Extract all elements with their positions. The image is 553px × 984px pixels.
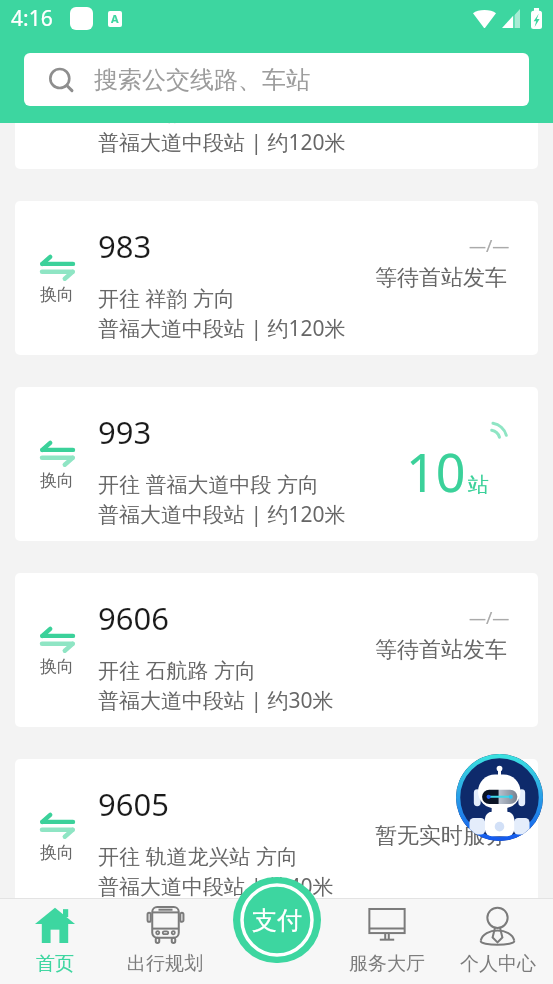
button[interactable]: 个人中心 xyxy=(442,906,553,976)
button[interactable]: 支付 xyxy=(233,877,321,963)
button[interactable]: 服务大厅 xyxy=(331,906,442,976)
staticText: 4:16 xyxy=(11,4,53,33)
staticText: 993 xyxy=(98,411,152,453)
staticText: 开往 祥韵 方向 普福大道中段站 | 约120米 xyxy=(98,123,346,156)
staticText: —/— xyxy=(469,606,510,629)
staticText: 等待首站发车 xyxy=(375,264,507,292)
staticText: 出行规划 xyxy=(127,952,203,976)
button[interactable]: 换向 xyxy=(15,123,538,169)
staticText: 换向 xyxy=(40,842,74,863)
button[interactable]: 搜索公交线路、车站 xyxy=(24,53,529,106)
staticText: A xyxy=(111,11,119,26)
button[interactable]: 首页 xyxy=(0,906,110,976)
staticText: 站 xyxy=(468,472,489,498)
staticText: 10 xyxy=(406,436,466,507)
button[interactable]: 出行规划 xyxy=(110,906,220,976)
staticText: 换向 xyxy=(40,284,74,305)
staticText: 开往 轨道龙兴站 方向 普福大道中段站 | 约40米 xyxy=(98,842,334,900)
staticText: 9605 xyxy=(98,783,169,825)
staticText: 9607 xyxy=(98,969,169,984)
staticText: 搜索公交线路、车站 xyxy=(94,65,310,95)
button[interactable]: 换向 xyxy=(15,945,538,984)
staticText: 换向 xyxy=(40,656,74,677)
staticText: 9606 xyxy=(98,597,169,639)
button[interactable]: 换向 xyxy=(15,759,538,913)
staticText: 个人中心 xyxy=(460,952,536,976)
staticText: 暂无实时服务 xyxy=(375,822,507,850)
staticText: 服务大厅 xyxy=(349,952,425,976)
staticText: 等待首站发车 xyxy=(375,636,507,664)
staticText: 开往 普福大道中段 方向 普福大道中段站 | 约120米 xyxy=(98,470,346,528)
staticText: 开往 石航路 方向 普福大道中段站 | 约30米 xyxy=(98,656,334,714)
staticText: 支付 xyxy=(252,905,302,936)
staticText: —/— xyxy=(469,234,510,257)
button[interactable]: 换向 xyxy=(15,573,538,727)
staticText: 首页 xyxy=(36,952,74,976)
staticText: 换向 xyxy=(40,470,74,491)
staticText: 983 xyxy=(98,225,152,267)
staticText: 开往 祥韵 方向 普福大道中段站 | 约120米 xyxy=(98,284,346,342)
button[interactable]: 换向 xyxy=(15,201,538,355)
button[interactable]: 智能助手 xyxy=(456,754,543,841)
button[interactable]: 换向 xyxy=(15,387,538,541)
